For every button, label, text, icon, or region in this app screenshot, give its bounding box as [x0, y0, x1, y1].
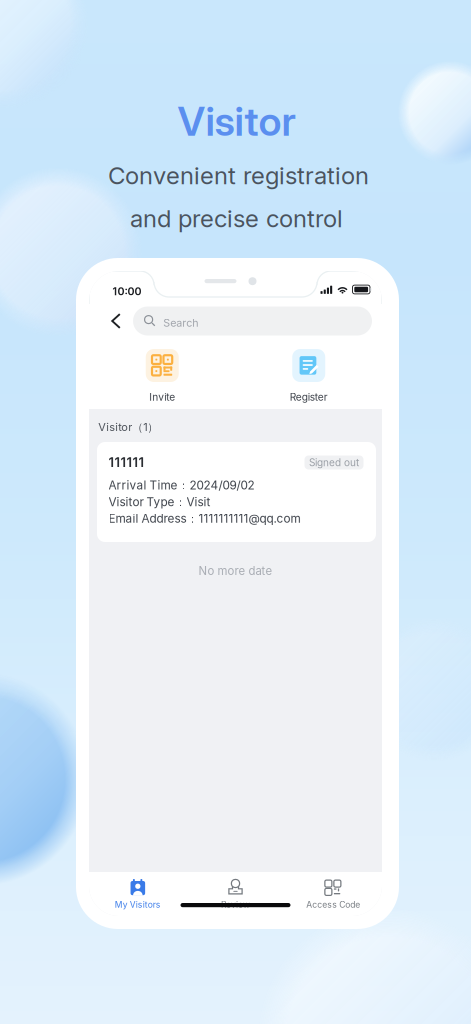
staticText: and precise control	[130, 204, 343, 233]
staticText: Arrival Time：2024/09/02	[108, 478, 254, 493]
staticText: My Visitors	[115, 899, 161, 910]
staticText: Visitor	[177, 97, 295, 145]
staticText: Review	[221, 899, 250, 910]
staticText: Search	[163, 316, 198, 329]
staticText: Visitor（1）	[98, 420, 158, 434]
staticText: 10:00	[112, 285, 141, 298]
staticText: No more date	[198, 564, 272, 578]
staticText: Signed out	[309, 456, 359, 469]
staticText: Access Code	[306, 899, 360, 910]
staticText: Email Address：1111111111@qq.com	[108, 511, 300, 526]
staticText: Visitor Type：Visit	[108, 495, 210, 510]
button[interactable]: Back	[101, 306, 131, 336]
button[interactable]: Invite	[146, 349, 179, 403]
button[interactable]: My Visitors	[89, 872, 187, 916]
button[interactable]: Review	[187, 872, 284, 916]
button[interactable]: Access Code	[284, 872, 382, 916]
staticText: Invite	[149, 391, 175, 403]
staticText: Register	[290, 391, 328, 403]
staticText: Convenient registration	[108, 161, 369, 190]
button[interactable]: Register	[290, 349, 328, 403]
staticText: 111111	[108, 454, 144, 470]
button[interactable]: Search	[133, 306, 372, 335]
